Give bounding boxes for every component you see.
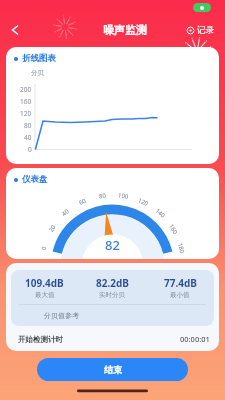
staticText: 0 xyxy=(28,145,32,154)
staticText: 40 xyxy=(60,207,71,218)
staticText: 80 xyxy=(24,121,32,130)
button[interactable]: 分贝值参考 xyxy=(11,305,214,326)
staticText: 82 xyxy=(6,236,219,254)
staticText: 最小值 xyxy=(170,291,190,299)
staticText: 140 xyxy=(154,207,167,220)
staticText: 180 xyxy=(176,242,186,255)
staticText: 160 xyxy=(20,97,32,106)
staticText: 120 xyxy=(137,196,150,208)
staticText: 120 xyxy=(20,109,32,118)
button[interactable]: 结束 xyxy=(37,358,188,381)
staticText: 结束 xyxy=(104,364,122,375)
staticText: 仪表盘 xyxy=(22,174,48,185)
staticText: 0 xyxy=(40,245,48,251)
staticText: 200 xyxy=(20,85,32,94)
staticText: 82.2dB xyxy=(96,276,129,290)
staticText: 折线图表 xyxy=(22,53,56,64)
staticText: 分贝 xyxy=(31,69,44,77)
staticText: 开始检测计时 xyxy=(18,335,63,344)
staticText: 00:00:01 xyxy=(180,334,210,344)
staticText: 最大值 xyxy=(35,291,55,299)
button[interactable]: 记录 xyxy=(186,25,214,36)
staticText: 160 xyxy=(167,223,180,236)
staticText: 分贝值参考 xyxy=(44,311,79,320)
staticText: 记录 xyxy=(197,25,214,36)
staticText: 77.4dB xyxy=(164,276,197,290)
staticText: 100 xyxy=(117,191,129,201)
staticText: 噪声监测 xyxy=(103,23,147,37)
button[interactable] xyxy=(9,24,21,36)
staticText: 40 xyxy=(24,133,32,142)
staticText: 实时分贝 xyxy=(99,291,125,299)
staticText: 109.4dB xyxy=(25,276,64,290)
staticText: 80 xyxy=(98,191,107,200)
staticText: 20 xyxy=(47,223,57,234)
staticText: 60 xyxy=(78,197,87,207)
